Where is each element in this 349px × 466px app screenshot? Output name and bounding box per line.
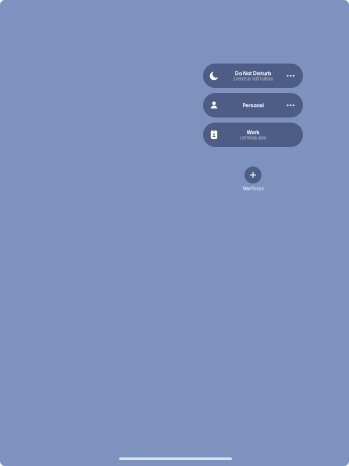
staticText: Silence all notifications — [233, 76, 273, 81]
button[interactable]: Work — [203, 122, 303, 147]
staticText: Get things done — [240, 135, 266, 140]
staticText: New Focus — [242, 186, 263, 191]
staticText: Do Not Disturb — [235, 70, 271, 76]
staticText: Personal — [242, 102, 263, 108]
button[interactable]: Personal — [203, 93, 303, 117]
staticText: Work — [246, 129, 259, 135]
button[interactable]: New Focus — [203, 166, 303, 191]
button[interactable]: Do Not Disturb — [203, 63, 303, 88]
